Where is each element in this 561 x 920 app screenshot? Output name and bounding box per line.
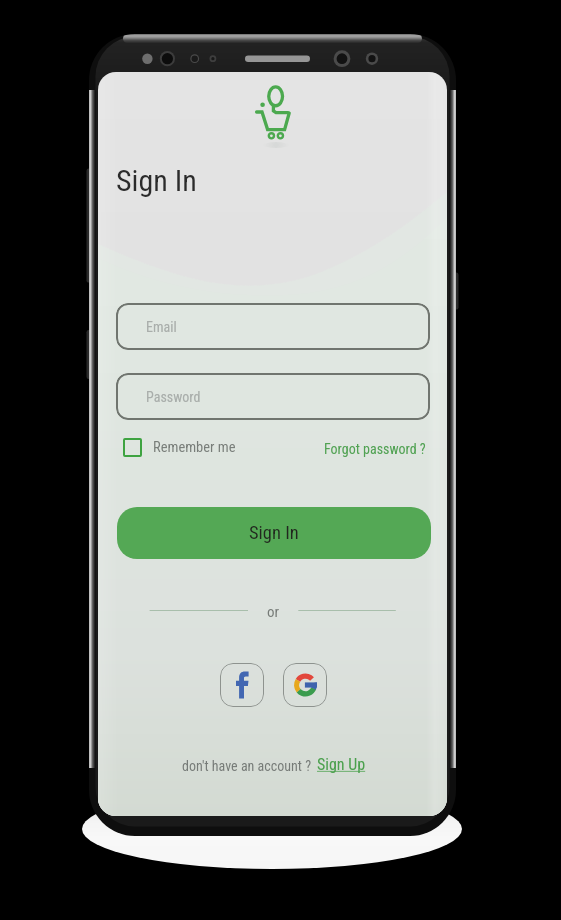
button[interactable]: Forgot password ? bbox=[321, 438, 429, 460]
staticText: Remember me bbox=[153, 439, 236, 456]
button[interactable]: Remember me bbox=[120, 435, 239, 460]
staticText: Sign Up bbox=[317, 755, 366, 774]
staticText: Email bbox=[146, 319, 177, 335]
button[interactable]: Email bbox=[116, 303, 430, 350]
staticText: or bbox=[267, 603, 280, 621]
staticText: Forgot password ? bbox=[324, 441, 426, 457]
staticText: Sign In bbox=[249, 522, 299, 544]
button[interactable]: Password bbox=[116, 373, 430, 420]
button[interactable]: Sign In bbox=[117, 507, 431, 559]
button[interactable]: Sign in with Facebook bbox=[220, 663, 264, 707]
staticText: Sign In bbox=[116, 163, 197, 198]
button[interactable]: Sign Up bbox=[317, 755, 366, 774]
staticText: don't have an account ? bbox=[182, 758, 312, 774]
staticText: Password bbox=[146, 389, 201, 405]
button[interactable]: Sign in with Google bbox=[283, 663, 327, 707]
